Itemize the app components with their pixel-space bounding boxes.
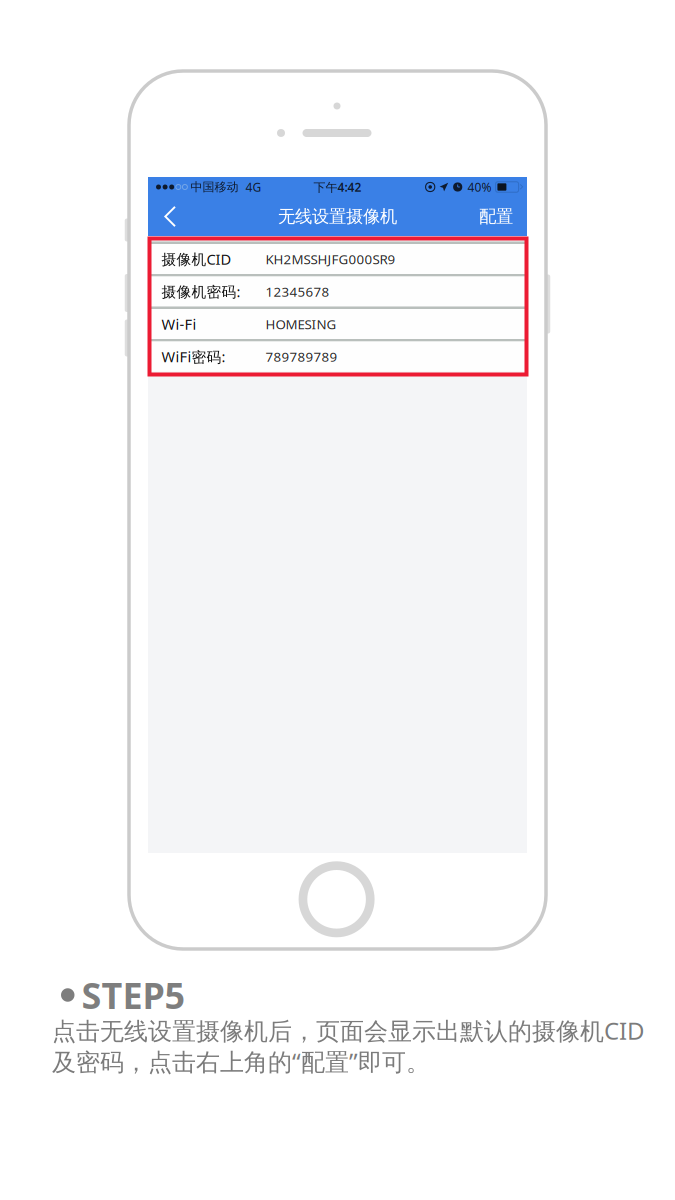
staticText: 中国移动	[190, 180, 238, 194]
staticText: 摄像机CID	[161, 249, 231, 269]
button[interactable]: 配置	[465, 197, 527, 236]
staticText: 无线设置摄像机	[278, 206, 397, 227]
staticText: WiFi密码:	[161, 347, 225, 366]
staticText: STEP5	[81, 971, 185, 1019]
staticText: 下午4:42	[313, 179, 361, 195]
staticText: 点击无线设置摄像机后，页面会显示出默认的摄像机CID	[52, 1015, 645, 1046]
staticText: 摄像机密码:	[161, 282, 240, 301]
button[interactable]: 返回	[148, 197, 192, 236]
staticText: 12345678	[265, 283, 329, 300]
staticText: 及密码，点击右上角的“配置”即可。	[52, 1046, 430, 1077]
button[interactable]: 摄像机CID	[148, 244, 527, 274]
button[interactable]: 摄像机密码:	[148, 276, 527, 306]
staticText: 配置	[479, 206, 513, 227]
staticText: KH2MSSHJFG000SR9	[265, 250, 395, 268]
button[interactable]: Wi-Fi	[148, 309, 527, 339]
staticText: HOMESING	[265, 315, 336, 333]
staticText: 40%	[468, 179, 492, 195]
staticText: 4G	[245, 179, 261, 195]
button[interactable]: WiFi密码:	[148, 341, 527, 371]
staticText: Wi-Fi	[161, 314, 196, 334]
staticText: 789789789	[265, 348, 337, 365]
